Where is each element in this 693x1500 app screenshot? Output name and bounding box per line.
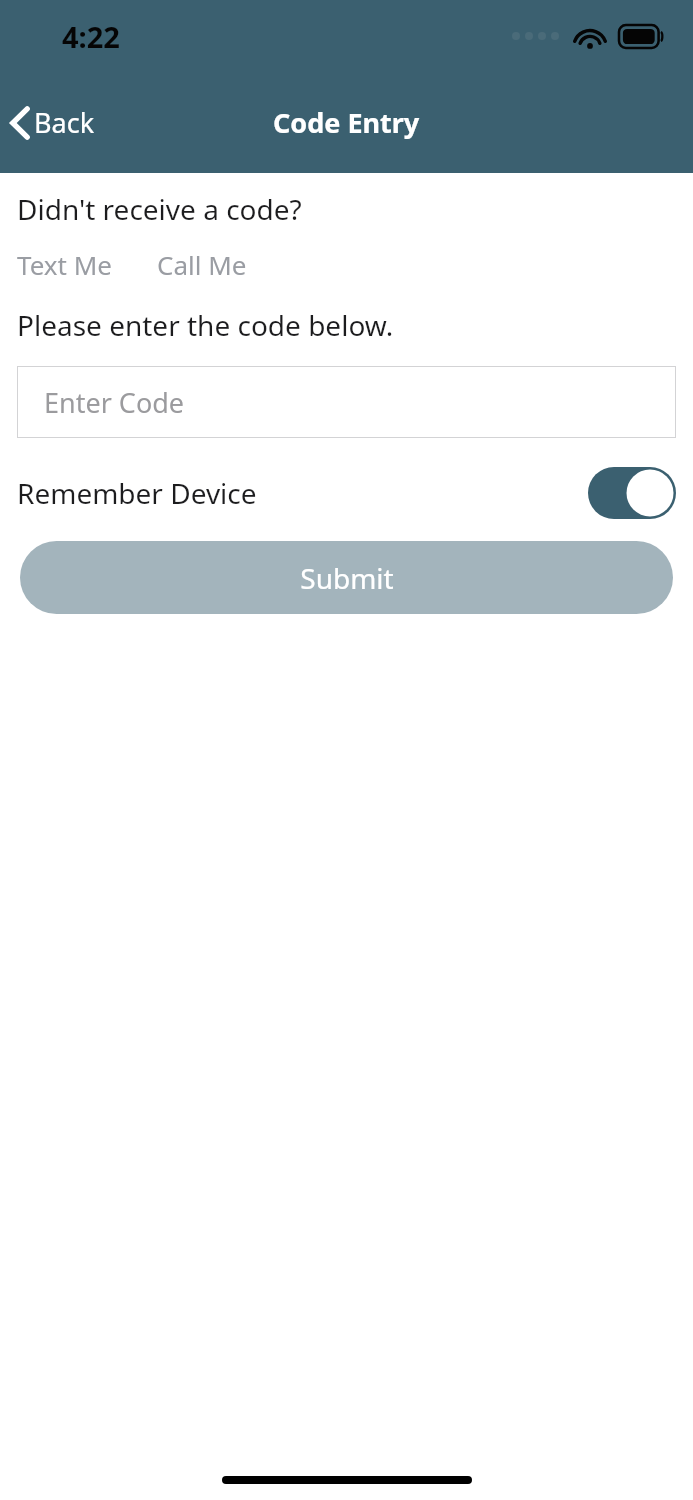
staticText: Didn't receive a code? [17, 190, 302, 228]
staticText: Submit [300, 559, 394, 597]
button[interactable]: Enter Code [17, 366, 676, 438]
staticText: Back [34, 104, 95, 141]
button[interactable]: Back [0, 94, 109, 151]
button[interactable]: Text Me [17, 247, 116, 282]
staticText: Text Me [17, 247, 112, 282]
staticText: Enter Code [44, 384, 185, 421]
button[interactable]: Submit [20, 541, 673, 614]
staticText: Code Entry [273, 104, 420, 141]
staticText: 4:22 [62, 17, 120, 56]
button[interactable]: Call Me [157, 247, 247, 282]
staticText: Please enter the code below. [17, 306, 394, 344]
button[interactable]: Remember Device toggle, on [588, 467, 676, 519]
staticText: Remember Device [17, 474, 257, 512]
staticText: Call Me [157, 247, 247, 282]
